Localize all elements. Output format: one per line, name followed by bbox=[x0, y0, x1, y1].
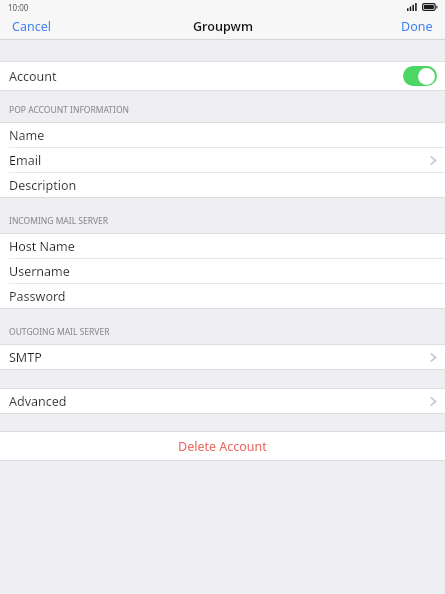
staticText: Delete Account bbox=[178, 438, 267, 455]
staticText: Name bbox=[9, 127, 45, 144]
staticText: Password bbox=[9, 288, 66, 305]
button[interactable]: Username bbox=[0, 259, 445, 283]
staticText: Description bbox=[9, 177, 77, 194]
staticText: Cancel bbox=[12, 18, 51, 35]
button[interactable]: Name bbox=[0, 123, 445, 147]
staticText: Account bbox=[9, 68, 57, 85]
staticText: SMTP bbox=[9, 349, 42, 366]
button[interactable]: Advanced bbox=[0, 389, 445, 413]
button[interactable]: Delete Account bbox=[0, 432, 445, 460]
button[interactable]: Email bbox=[0, 148, 445, 172]
button[interactable]: Host Name bbox=[0, 234, 445, 258]
staticText: Done bbox=[401, 18, 433, 35]
staticText: Host Name bbox=[9, 238, 75, 255]
staticText: Advanced bbox=[9, 393, 67, 410]
staticText: Email bbox=[9, 152, 42, 169]
staticText: INCOMING MAIL SERVER bbox=[9, 215, 109, 227]
button[interactable]: Done bbox=[389, 14, 445, 39]
staticText: POP ACCOUNT INFORMATION bbox=[9, 104, 129, 116]
staticText: 10:00 bbox=[8, 2, 29, 13]
staticText: OUTGOING MAIL SERVER bbox=[9, 326, 110, 338]
button[interactable]: SMTP bbox=[0, 345, 445, 369]
button[interactable]: Description bbox=[0, 173, 445, 197]
button[interactable]: Account bbox=[0, 62, 445, 90]
button[interactable]: Password bbox=[0, 284, 445, 308]
button[interactable]: Account toggle, on bbox=[403, 66, 437, 86]
button[interactable]: Cancel bbox=[0, 14, 63, 39]
staticText: Groupwm bbox=[193, 18, 253, 35]
staticText: Username bbox=[9, 263, 70, 280]
